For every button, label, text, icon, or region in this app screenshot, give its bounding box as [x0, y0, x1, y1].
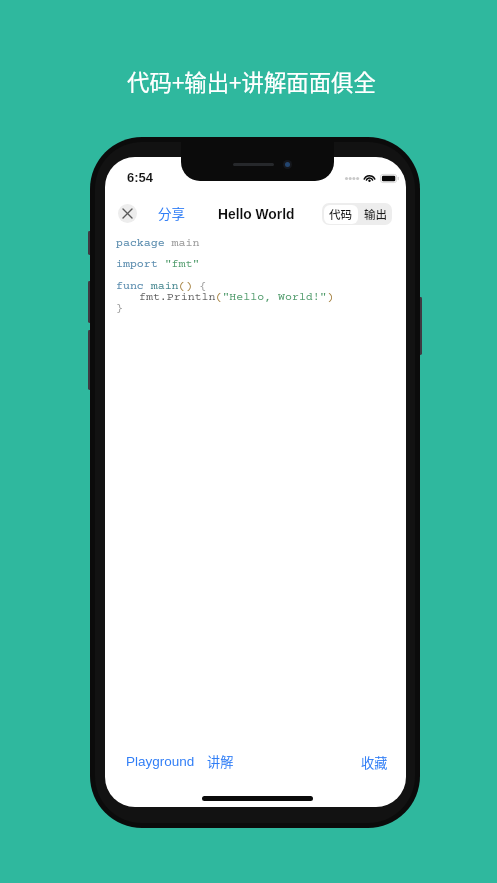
staticText: fmt.Println("Hello, World!"): [139, 291, 334, 304]
staticText: 分享: [158, 203, 185, 223]
staticText: 讲解: [207, 752, 234, 771]
staticText: }: [116, 302, 123, 315]
button[interactable]: Close: [118, 204, 137, 223]
button[interactable]: 讲解: [207, 748, 234, 775]
button[interactable]: Playground: [126, 750, 195, 773]
button[interactable]: 代码: [324, 205, 358, 224]
staticText: import "fmt": [116, 258, 200, 271]
staticText: Hello World: [218, 207, 295, 222]
staticText: func main() {: [116, 280, 207, 293]
button[interactable]: 输出: [359, 205, 392, 224]
button[interactable]: 收藏: [361, 749, 388, 776]
staticText: 代码+输出+讲解面面俱全: [127, 65, 376, 97]
staticText: 收藏: [361, 753, 388, 772]
staticText: package main: [116, 237, 200, 250]
staticText: 代码: [329, 206, 353, 223]
staticText: Playground: [126, 754, 195, 769]
staticText: 输出: [364, 206, 388, 223]
button[interactable]: 分享: [154, 199, 189, 227]
staticText: 6:54: [127, 170, 154, 185]
